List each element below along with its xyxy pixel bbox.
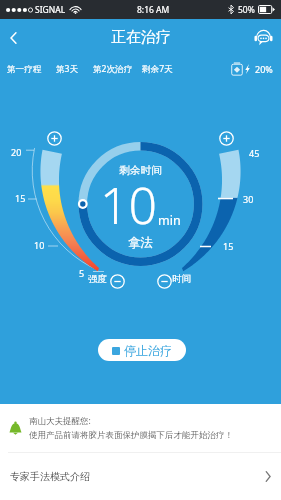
staticText: 正在治疗: [111, 28, 171, 47]
button[interactable]: Decrease intensity: [110, 274, 125, 289]
staticText: 20: [11, 146, 22, 158]
staticText: 15: [223, 240, 234, 252]
button[interactable]: Decrease time: [157, 274, 172, 289]
staticText: 拿法: [40, 235, 241, 251]
staticText: min: [158, 212, 181, 229]
staticText: 15: [15, 192, 26, 204]
staticText: 5: [79, 267, 85, 279]
staticText: 20%: [255, 63, 273, 75]
staticText: 停止治疗: [124, 343, 172, 358]
staticText: 剩余时间: [40, 164, 241, 177]
staticText: 第一疗程: [7, 64, 42, 75]
button[interactable]: 专家手法模式介绍: [0, 453, 281, 499]
button[interactable]: 停止治疗: [98, 339, 186, 361]
staticText: 8:16 AM: [137, 4, 170, 16]
staticText: 10: [100, 171, 158, 239]
button[interactable]: Back: [0, 19, 26, 56]
staticText: 专家手法模式介绍: [10, 470, 90, 483]
button[interactable]: Customer support: [245, 19, 281, 56]
staticText: 时间: [172, 273, 191, 285]
staticText: 10: [34, 239, 45, 251]
staticText: 使用产品前请将胶片表面保护膜揭下后才能开始治疗！: [29, 430, 233, 441]
staticText: 南山大夫提醒您:: [29, 415, 91, 427]
staticText: 强度: [88, 273, 107, 285]
staticText: 45: [249, 147, 260, 159]
staticText: SIGNAL: [35, 4, 66, 16]
button[interactable]: Increase intensity: [47, 131, 62, 146]
staticText: 50%: [238, 4, 255, 16]
staticText: 30: [243, 193, 254, 205]
staticText: 剩余7天: [142, 63, 173, 75]
staticText: 第2次治疗: [93, 63, 133, 75]
button[interactable]: Increase time: [219, 131, 234, 146]
staticText: 第3天: [56, 63, 79, 75]
